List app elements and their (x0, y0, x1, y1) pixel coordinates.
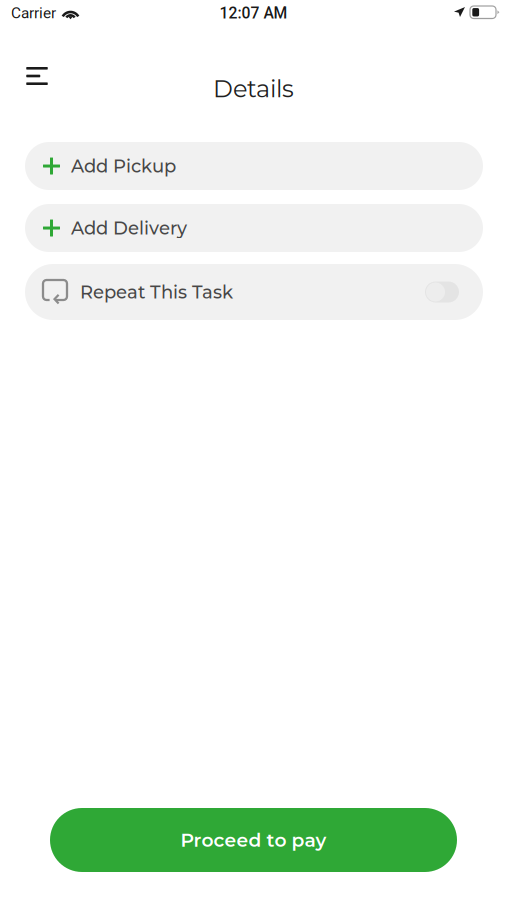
button[interactable]: Repeat This Task (25, 264, 483, 320)
button[interactable]: Menu (15, 54, 59, 98)
button[interactable]: Proceed to pay (50, 808, 457, 872)
staticText: Add Pickup (71, 155, 176, 177)
button[interactable]: Add Delivery (25, 204, 483, 252)
button[interactable]: Add Pickup (25, 142, 483, 190)
staticText: Repeat This Task (80, 281, 233, 303)
staticText: Carrier (11, 4, 56, 22)
staticText: Proceed to pay (180, 829, 326, 851)
staticText: Add Delivery (71, 217, 187, 239)
staticText: Details (213, 74, 294, 103)
staticText: 12:07 AM (219, 4, 287, 22)
